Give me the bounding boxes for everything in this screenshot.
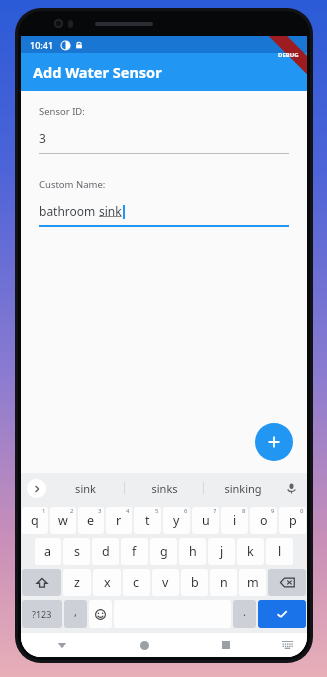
staticText: 3: [39, 130, 46, 146]
staticText: z: [74, 574, 80, 591]
staticText: s: [74, 543, 80, 560]
staticText: l: [278, 543, 282, 560]
button[interactable]: z: [63, 569, 91, 596]
button[interactable]: q: [22, 507, 48, 534]
button[interactable]: c: [123, 569, 150, 596]
button[interactable]: s: [63, 538, 90, 565]
staticText: 9: [271, 507, 275, 515]
button[interactable]: n: [210, 569, 237, 596]
staticText: 3: [98, 507, 102, 515]
staticText: i: [233, 512, 237, 529]
button[interactable]: Emoji: [89, 600, 112, 628]
button[interactable]: k: [237, 538, 264, 565]
staticText: h: [189, 543, 197, 560]
button[interactable]: ?123: [22, 600, 62, 628]
staticText: r: [116, 512, 122, 529]
button[interactable]: h: [179, 538, 206, 565]
staticText: x: [104, 574, 111, 591]
button[interactable]: x: [93, 569, 121, 596]
button[interactable]: v: [152, 569, 179, 596]
button[interactable]: j: [208, 538, 235, 565]
staticText: u: [202, 512, 210, 529]
staticText: w: [58, 512, 68, 529]
button[interactable]: Recents: [185, 633, 267, 657]
staticText: bathroom: [39, 203, 99, 219]
button[interactable]: w: [50, 507, 76, 534]
staticText: sinks: [151, 481, 178, 496]
button[interactable]: sinking: [204, 473, 282, 503]
button[interactable]: e: [78, 507, 104, 534]
staticText: a: [44, 543, 52, 560]
button[interactable]: Voice input: [282, 479, 300, 497]
button[interactable]: r: [106, 507, 132, 534]
staticText: g: [160, 543, 168, 560]
staticText: 0: [300, 507, 304, 515]
staticText: ,: [74, 604, 77, 619]
button[interactable]: .: [233, 600, 256, 628]
staticText: DEBUG: [278, 51, 299, 59]
button[interactable]: f: [121, 538, 148, 565]
staticText: sink: [99, 203, 122, 219]
staticText: Add Water Sensor: [33, 62, 162, 82]
button[interactable]: sinks: [125, 473, 203, 503]
button[interactable]: Home: [103, 633, 185, 657]
button[interactable]: o: [250, 507, 277, 534]
staticText: 2: [70, 507, 74, 515]
button[interactable]: p: [279, 507, 306, 534]
staticText: 10:41: [30, 39, 54, 51]
staticText: v: [162, 574, 169, 591]
button[interactable]: Back: [21, 633, 103, 657]
button[interactable]: g: [150, 538, 177, 565]
button[interactable]: b: [181, 569, 208, 596]
button[interactable]: d: [92, 538, 119, 565]
staticText: t: [145, 512, 150, 529]
staticText: ?123: [32, 608, 52, 620]
button[interactable]: More suggestions: [27, 479, 46, 498]
staticText: 8: [242, 507, 246, 515]
button[interactable]: y: [163, 507, 190, 534]
staticText: 5: [155, 507, 159, 515]
button[interactable]: i: [221, 507, 248, 534]
staticText: 4: [126, 507, 130, 515]
button[interactable]: Shift: [22, 569, 61, 596]
button[interactable]: m: [239, 569, 266, 596]
staticText: y: [173, 512, 180, 529]
staticText: k: [247, 543, 254, 560]
staticText: b: [191, 574, 199, 591]
staticText: Sensor ID:: [39, 105, 85, 118]
staticText: 7: [213, 507, 217, 515]
staticText: n: [220, 574, 228, 591]
staticText: .: [243, 604, 246, 619]
staticText: d: [102, 543, 110, 560]
button[interactable]: l: [266, 538, 293, 565]
button[interactable]: Switch keyboard: [267, 633, 307, 657]
button[interactable]: t: [134, 507, 161, 534]
staticText: 6: [184, 507, 188, 515]
staticText: Custom Name:: [39, 178, 106, 191]
staticText: q: [31, 512, 39, 529]
button[interactable]: sink: [46, 473, 124, 503]
staticText: f: [132, 543, 137, 560]
staticText: sink: [75, 481, 96, 496]
staticText: sinking: [224, 481, 262, 496]
staticText: 1: [42, 507, 46, 515]
button[interactable]: ,: [64, 600, 87, 628]
button[interactable]: Add: [255, 423, 293, 461]
staticText: j: [220, 543, 224, 560]
staticText: e: [87, 512, 95, 529]
staticText: m: [247, 574, 259, 591]
staticText: o: [260, 512, 268, 529]
staticText: c: [133, 574, 140, 591]
staticText: p: [289, 512, 297, 529]
button[interactable]: Enter: [258, 600, 306, 628]
button[interactable]: Backspace: [268, 569, 306, 596]
button[interactable]: u: [192, 507, 219, 534]
button[interactable]: a: [35, 538, 61, 565]
